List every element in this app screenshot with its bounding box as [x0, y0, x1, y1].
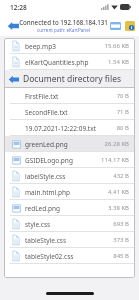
staticText: redLed.png — [25, 204, 107, 213]
staticText: tableStyle.css — [25, 236, 113, 245]
button[interactable]: greenLed.png — [4, 136, 135, 152]
button[interactable]: Screen — [109, 19, 122, 32]
staticText: greenLed.png — [25, 140, 104, 149]
button[interactable]: main.html.php — [4, 184, 135, 200]
button[interactable]: tableStyle.css — [4, 232, 135, 248]
button[interactable]: tableStyle02.css — [4, 248, 135, 264]
staticText: GSIDELogo.png — [25, 156, 101, 165]
staticText: beep.mp3 — [25, 42, 104, 51]
staticText: Connected to 192.168.184.131 — [19, 18, 108, 26]
staticText: 845 B — [113, 252, 129, 260]
staticText: 693 B — [113, 220, 129, 228]
button[interactable]: FirstFile.txt — [4, 88, 135, 104]
staticText: 19.07.2021-12:22:09.txt — [25, 124, 116, 133]
staticText: 15.66 KB — [104, 42, 129, 50]
staticText: SecondFile.txt — [25, 108, 116, 117]
button[interactable]: 19.07.2021-12:22:09.txt — [4, 120, 135, 136]
staticText: 373 B — [113, 236, 129, 244]
staticText: main.html.php — [25, 188, 107, 197]
staticText: 80 B — [116, 124, 129, 132]
staticText: 1.54 KB — [107, 58, 129, 66]
staticText: Document directory files — [23, 73, 122, 85]
button[interactable]: GSIDELogo.png — [4, 152, 135, 168]
staticText: tableStyle02.css — [25, 252, 113, 261]
button[interactable]: SecondFile.txt — [4, 104, 135, 120]
staticText: 71 B — [116, 108, 129, 116]
staticText: 114.17 KB — [101, 156, 129, 164]
staticText: 432 B — [113, 172, 129, 180]
staticText: current path: eKartPanel — [37, 27, 90, 33]
staticText: 12:28 — [10, 3, 27, 12]
button[interactable]: Document directory files — [4, 70, 135, 87]
button[interactable]: Info — [123, 19, 136, 32]
staticText: 3.38 KB — [107, 204, 129, 212]
button[interactable]: redLed.png — [4, 200, 135, 216]
button[interactable]: elKartQuantities.php — [4, 54, 135, 70]
staticText: elKartQuantities.php — [25, 58, 107, 67]
button[interactable]: Back — [4, 17, 22, 33]
button[interactable]: labelStyle.css — [4, 168, 135, 184]
staticText: 70 B — [116, 92, 129, 100]
staticText: 26.28 KB — [104, 140, 129, 148]
staticText: labelStyle.css — [25, 172, 113, 181]
button[interactable]: style.css — [4, 216, 135, 232]
staticText: FirstFile.txt — [25, 92, 116, 101]
staticText: 4.41 KB — [107, 188, 129, 196]
staticText: style.css — [25, 220, 113, 229]
button[interactable]: beep.mp3 — [4, 38, 135, 54]
